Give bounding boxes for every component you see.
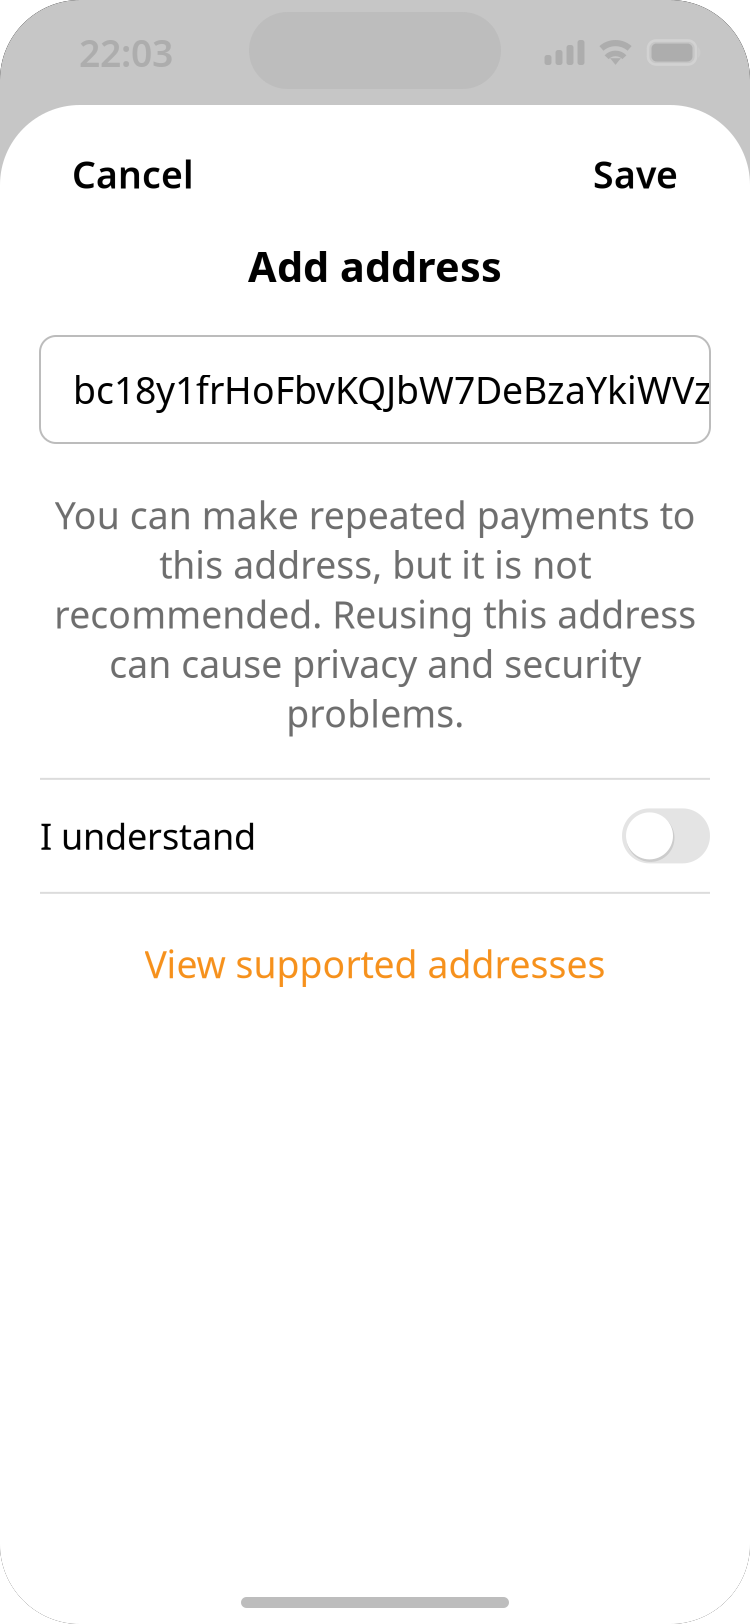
staticText: I understand [40,812,256,860]
staticText: You can make repeated payments to this a… [54,490,696,738]
staticText: Cancel [72,149,194,199]
button[interactable]: View supported addresses [124,940,625,988]
button[interactable]: Save [569,146,702,202]
staticText: Add address [248,239,502,293]
staticText: Save [593,149,678,199]
staticText: bc18y1frHoFbvKQJbW7DeBzaYkiWVzdCfTqLZWxS [73,365,750,414]
button[interactable]: bc18y1frHoFbvKQJbW7DeBzaYkiWVzdCfTqLZWxS [40,336,710,443]
staticText: View supported addresses [144,939,605,989]
staticText: 22:03 [79,28,173,77]
button[interactable]: Cancel [48,146,218,202]
button[interactable]: I understand [40,780,710,892]
